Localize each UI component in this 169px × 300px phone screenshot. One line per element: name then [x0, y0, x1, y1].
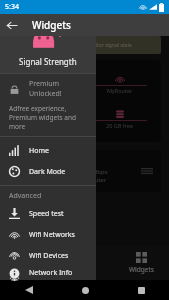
button[interactable]: Dark Mode	[0, 161, 96, 182]
button[interactable]: Home	[57, 280, 113, 300]
staticText: Widgets	[129, 265, 154, 274]
button[interactable]: Wifi Networks	[0, 224, 96, 245]
staticText: MyRouter	[107, 87, 133, 94]
button[interactable]: -65	[8, 150, 161, 192]
staticText: 144 Mbps	[80, 168, 108, 176]
staticText: Advanced	[9, 191, 42, 201]
staticText: Speed test	[29, 209, 64, 219]
button[interactable]: Wifi Devices	[0, 245, 96, 266]
button[interactable]: Back	[0, 280, 57, 300]
staticText: Widgets	[32, 18, 71, 32]
button[interactable]: Adfree experience, Premium widgets and m…	[0, 104, 96, 131]
button[interactable]: Premium Unlocked!	[0, 74, 96, 104]
staticText: Wifi Devices	[29, 251, 69, 261]
staticText: Network Info	[29, 268, 73, 278]
staticText: MyOperator	[33, 87, 65, 94]
staticText: Home	[29, 146, 49, 156]
staticText: Widgets	[8, 230, 43, 242]
staticText: Home	[19, 265, 38, 274]
staticText: Dark Mode	[29, 167, 66, 177]
button[interactable]: Home	[0, 140, 96, 161]
staticText: 20 GB free	[106, 122, 133, 129]
button[interactable]: Add widget to home screen to monitor sig…	[8, 36, 161, 54]
staticText: Premium Unlocked!	[29, 79, 87, 99]
staticText: My Router	[77, 176, 107, 184]
staticText: Signal Strength	[19, 56, 77, 67]
staticText: -65	[86, 158, 97, 168]
button[interactable]: Signal	[57, 246, 113, 280]
button[interactable]: Recents	[113, 280, 169, 300]
staticText: -40	[50, 74, 61, 84]
staticText: Add widget to home screen to monitor sig…	[13, 42, 132, 49]
staticText: 5:34	[5, 2, 19, 12]
button[interactable]: Widgets	[113, 246, 169, 280]
button[interactable]: Speed test	[0, 203, 96, 224]
button[interactable]: Network Info	[0, 266, 96, 280]
staticText: Adfree experience, Premium widgets and m…	[9, 104, 87, 131]
button[interactable]: -40	[8, 60, 161, 142]
button[interactable]: Home	[0, 246, 57, 280]
button[interactable]: Back	[0, 14, 22, 36]
staticText: Wifi Networks	[29, 230, 75, 240]
